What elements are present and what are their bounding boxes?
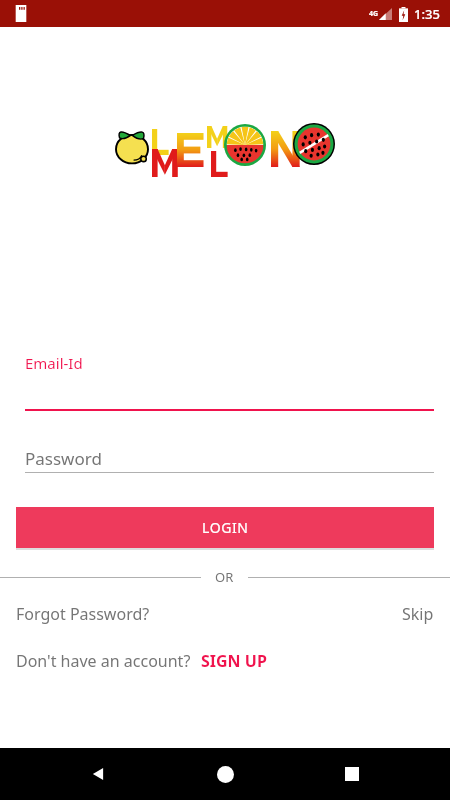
button[interactable]: Recents [322,748,382,800]
staticText: 4G [369,9,379,19]
staticText: Password [25,447,102,470]
button[interactable]: SIGN UP [199,646,269,676]
button[interactable]: Email-Id [0,345,450,415]
staticText: Email-Id [25,353,83,373]
staticText: SIGN UP [201,650,267,672]
button[interactable]: Skip [402,599,434,629]
staticText: Skip [402,603,434,625]
button[interactable]: LOGIN [16,507,434,548]
staticText: 1:35 [414,5,440,23]
button[interactable]: Forgot Password? [16,599,150,629]
staticText: Forgot Password? [16,603,150,625]
staticText: Don't have an account? [16,650,191,672]
staticText: OR [215,568,234,586]
staticText: LOGIN [202,518,249,537]
button[interactable]: Back [68,748,128,800]
button[interactable]: Password [0,440,450,476]
button[interactable]: Home [195,748,255,800]
